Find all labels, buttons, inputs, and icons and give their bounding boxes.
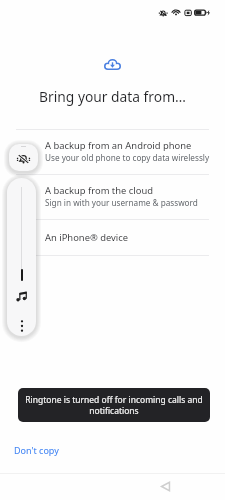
button[interactable]: Ringer off xyxy=(9,144,38,171)
button[interactable]: Back xyxy=(151,473,178,500)
staticText: A backup from an Android phone xyxy=(45,139,192,152)
button[interactable]: Don't copy xyxy=(6,438,67,462)
staticText: Sign in with your username & password xyxy=(45,197,198,208)
staticText: A backup from the cloud xyxy=(45,184,153,197)
staticText: Use your old phone to copy data wireless… xyxy=(45,152,210,163)
button[interactable]: A backup from the cloud xyxy=(0,175,225,219)
staticText: An iPhone® device xyxy=(45,231,129,244)
button[interactable]: More volume settings xyxy=(13,317,31,335)
staticText: Don't copy xyxy=(14,444,59,456)
staticText: Ringtone is turned off for incoming call… xyxy=(25,394,203,416)
button[interactable]: A backup from an Android phone xyxy=(0,130,225,174)
button[interactable]: An iPhone® device xyxy=(0,220,225,255)
staticText: Bring your data from… xyxy=(0,87,225,106)
button[interactable]: Media volume xyxy=(13,287,31,305)
